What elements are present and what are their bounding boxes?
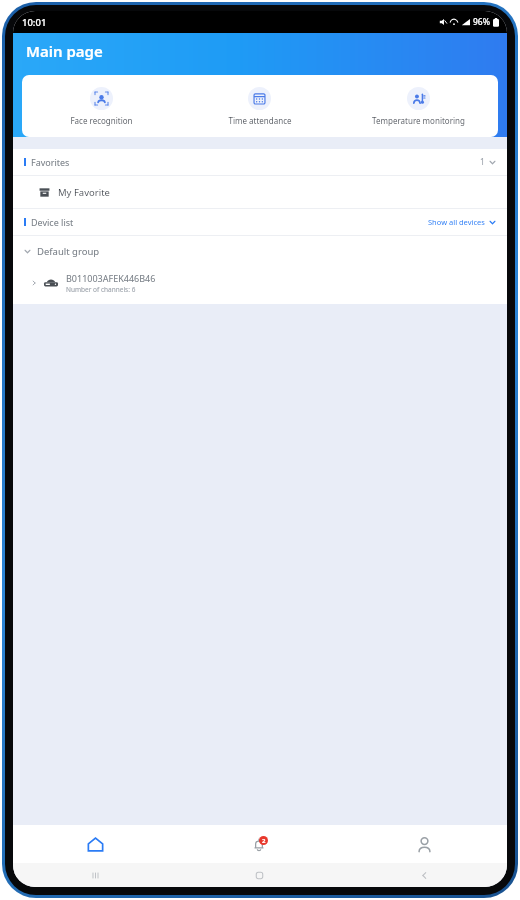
button[interactable]: Home xyxy=(13,825,177,863)
staticText: 10:01 xyxy=(22,16,47,29)
button[interactable]: Home xyxy=(177,863,342,887)
button[interactable]: Notifications xyxy=(177,825,342,863)
staticText: Time attendance xyxy=(228,115,292,126)
staticText: 1 xyxy=(480,156,485,168)
button[interactable]: Default group xyxy=(13,236,507,266)
staticText: Main page xyxy=(26,41,103,61)
button[interactable]: Profile xyxy=(342,825,507,863)
staticText: Favorites xyxy=(31,156,70,168)
button[interactable]: Show all devices xyxy=(428,217,496,227)
staticText: Show all devices xyxy=(428,217,485,227)
button[interactable]: Face recognition xyxy=(22,75,180,137)
button[interactable]: My Favorite xyxy=(13,176,507,208)
button[interactable]: B011003AFEK446B46 xyxy=(13,266,507,300)
staticText: Default group xyxy=(37,245,100,258)
staticText: Number of channels: 6 xyxy=(66,285,136,294)
button[interactable]: Recents xyxy=(13,863,177,887)
staticText: 2 xyxy=(262,837,266,845)
staticText: Temperature monitoring xyxy=(372,115,465,126)
staticText: My Favorite xyxy=(58,186,110,199)
button[interactable]: Temperature monitoring xyxy=(339,75,498,137)
staticText: B011003AFEK446B46 xyxy=(66,272,156,284)
staticText: 96% xyxy=(473,16,490,28)
button[interactable]: Time attendance xyxy=(180,75,339,137)
staticText: Face recognition xyxy=(70,115,133,126)
button[interactable]: Back xyxy=(342,863,507,887)
staticText: Device list xyxy=(31,216,74,228)
